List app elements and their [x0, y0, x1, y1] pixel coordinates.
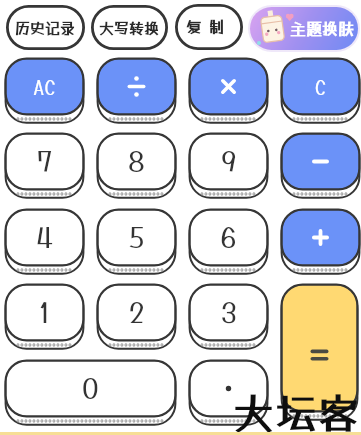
button[interactable]	[189, 58, 268, 124]
staticText: 5	[129, 221, 145, 254]
staticText: 1	[39, 296, 51, 329]
button[interactable]	[281, 284, 358, 421]
staticText: 2	[129, 296, 145, 329]
button[interactable]	[97, 58, 176, 124]
button[interactable]: 0	[5, 360, 176, 426]
button[interactable]	[189, 360, 268, 426]
staticText: 大写转换	[99, 19, 160, 37]
button[interactable]: 2	[97, 284, 176, 350]
staticText: 7	[37, 145, 53, 178]
button[interactable]: 3	[189, 284, 268, 350]
staticText: 6	[220, 221, 237, 254]
button[interactable]: 6	[189, 209, 268, 275]
staticText: 8	[128, 145, 145, 178]
button[interactable]: 5	[97, 209, 176, 275]
button[interactable]: 大写转换	[91, 5, 168, 50]
button[interactable]: 主题换肤	[250, 7, 358, 50]
button[interactable]: 9	[189, 133, 268, 199]
staticText: C	[315, 76, 327, 98]
staticText: 复制	[186, 18, 232, 36]
button[interactable]: 1	[5, 284, 84, 350]
button[interactable]: C	[281, 58, 360, 124]
button[interactable]	[281, 133, 360, 199]
button[interactable]: 7	[5, 133, 84, 199]
button[interactable]: 复制	[175, 4, 243, 50]
staticText: 0	[82, 372, 99, 405]
staticText: 历史记录	[15, 19, 76, 37]
button[interactable]	[281, 209, 360, 275]
button[interactable]: 历史记录	[6, 5, 85, 50]
staticText: AC	[33, 76, 56, 98]
staticText: 主题换肤	[290, 19, 355, 38]
staticText: 9	[221, 145, 237, 178]
button[interactable]: 8	[97, 133, 176, 199]
staticText: 大坛客	[233, 389, 361, 435]
button[interactable]: 4	[5, 209, 84, 275]
staticText: 3	[221, 296, 237, 329]
button[interactable]: AC	[5, 58, 84, 124]
staticText: 4	[36, 221, 53, 254]
